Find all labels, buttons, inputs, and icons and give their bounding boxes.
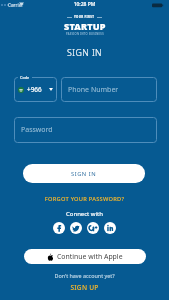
button[interactable]: Google Plus — [87, 222, 99, 234]
button[interactable]: Twitter — [70, 222, 82, 234]
button[interactable]: Continue with Apple — [24, 249, 146, 264]
staticText: +966 — [27, 85, 42, 94]
staticText: Continue with Apple — [57, 252, 123, 261]
button[interactable]: SIGN UP — [0, 283, 169, 292]
button[interactable]: Password — [14, 117, 157, 143]
staticText: SIGN IN — [0, 47, 169, 59]
button[interactable]: LinkedIn — [104, 222, 116, 234]
button[interactable]: Phone Number — [61, 77, 157, 102]
button[interactable]: Facebook — [53, 222, 65, 234]
staticText: 10:28 PM — [0, 1, 169, 8]
staticText: Don't have account yet? — [0, 272, 169, 279]
staticText: Code — [20, 75, 30, 80]
staticText: Connect with — [0, 210, 169, 218]
staticText: PASSION INTO BUSINESS — [66, 32, 104, 36]
staticText: SIGN IN — [71, 170, 97, 178]
button[interactable]: SIGN IN — [23, 164, 145, 183]
button[interactable]: FORGOT YOUR PASSWORD? — [0, 195, 169, 203]
staticText: YOUR FIRST — [74, 15, 95, 19]
staticText: Carrier — [8, 2, 24, 8]
staticText: STARTUP — [64, 20, 106, 32]
staticText: Phone Number — [68, 85, 119, 95]
staticText: Password — [21, 125, 53, 135]
button[interactable]: +966 — [14, 77, 57, 102]
